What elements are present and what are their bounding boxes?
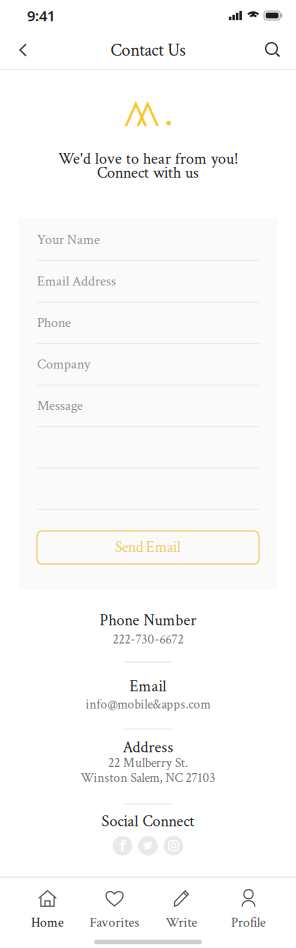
staticText: Company [37,355,90,373]
button[interactable]: Search [254,31,292,69]
button[interactable]: Send Email [37,531,259,564]
staticText: Message [37,397,83,415]
staticText: Connect with us [97,163,199,183]
staticText: Phone Number [99,610,196,631]
staticText: Write [165,914,197,932]
staticText: We'd love to hear from you! [58,149,238,169]
staticText: Email Address [37,272,116,290]
button[interactable]: Facebook [113,836,132,855]
staticText: Email [129,676,166,697]
staticText: 9:41 [27,6,55,25]
staticText: Social Connect [101,811,194,832]
staticText: Your Name [37,231,100,249]
staticText: 22 Mulberry St. [108,754,188,771]
button[interactable]: Home [14,890,81,932]
button[interactable]: Twitter [138,836,158,855]
staticText: Phone [37,314,71,332]
button[interactable]: Back [4,31,42,69]
staticText: 222-730-6672 [112,631,183,648]
button[interactable]: Write [148,890,215,932]
staticText: Favorites [89,914,139,932]
button[interactable]: Profile [215,890,282,932]
staticText: Profile [231,914,266,932]
staticText: info@mobile&apps.com [85,696,210,713]
staticText: f [119,835,125,856]
staticText: Address [122,737,173,758]
staticText: Winston Salem, NC 27103 [80,770,215,787]
staticText: Contact Us [110,39,185,62]
button[interactable]: Instagram [164,836,183,855]
staticText: Home [31,914,64,932]
button[interactable]: Favorites [81,890,148,932]
staticText: Send Email [115,537,181,557]
